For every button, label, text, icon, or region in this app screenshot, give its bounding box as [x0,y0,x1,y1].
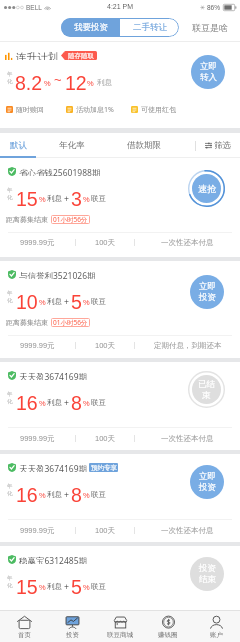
staticText: 年 [7,290,13,297]
staticText: 转入 [200,72,217,83]
staticText: + [64,297,69,306]
staticText: 年 [7,575,13,582]
staticText: 投资 [199,482,216,493]
button[interactable]: 首页 [0,610,48,642]
staticText: 100天 [95,526,116,535]
button[interactable]: 二手转让 [120,18,179,37]
staticText: 100天 [95,618,116,627]
staticText: 随存随取 [68,52,94,60]
staticText: 化 [7,194,13,201]
staticText: 天天盈3674169期 [19,463,88,472]
staticText: 借款期限 [127,140,161,151]
button[interactable]: 立即 [191,55,225,89]
staticText: 年 [7,187,13,194]
staticText: 筛选 [214,140,231,151]
staticText: 86% [207,4,221,11]
staticText: 活动加息1% [76,105,114,114]
staticText: 年 [7,71,13,78]
staticText: 距离募集结束 [6,318,48,327]
staticText: 8 [71,484,82,502]
staticText: 利息 [47,297,62,306]
button[interactable]: 我要投资 [61,18,120,37]
staticText: 联豆 [91,582,106,591]
staticText: % [39,195,46,203]
staticText: 3 [71,188,82,206]
staticText: 一次性还本付息 [161,238,214,247]
staticText: 化 [7,78,13,85]
button[interactable]: 投资结束 [188,555,225,592]
staticText: % [83,298,90,306]
staticText: 二手转让 [133,22,167,33]
button[interactable]: 年化率 [42,133,102,158]
staticText: 01小时56分 [53,318,88,327]
staticText: + [64,490,69,499]
staticText: 化 [7,582,13,589]
staticText: 投资 [199,563,216,574]
button[interactable]: 天天盈3674169期 [0,362,240,450]
button[interactable]: 借款期限 [108,133,180,158]
staticText: 化 [7,297,13,304]
button[interactable]: 与信誉利3521026期 [0,261,240,358]
button[interactable]: 省心省钱25601988期 [0,158,240,257]
staticText: 100天 [95,238,116,247]
staticText: 一次性还本付息 [161,434,214,443]
staticText: BELL [26,4,42,11]
staticText: 100天 [95,341,116,350]
button[interactable]: 筛选 [196,133,240,158]
staticText: 定期付息，到期还本 [154,341,222,350]
staticText: % [39,399,46,407]
staticText: 利息 [47,490,62,499]
staticText: 8 [71,392,82,410]
staticText: % [83,195,90,203]
staticText: 利息 [97,78,112,87]
staticText: 16 [16,484,38,502]
staticText: 结束 [199,574,216,585]
staticText: 8.2 [15,72,43,90]
button[interactable]: 已结束 [188,371,225,408]
staticText: 立即 [200,61,217,72]
staticText: 利息 [47,398,62,407]
staticText: 利息 [47,582,62,591]
button[interactable]: 立即投资 [188,273,225,310]
staticText: 天天盈3674169期 [19,371,88,380]
staticText: 年 [7,391,13,398]
button[interactable]: 联豆是啥 [192,22,228,33]
button[interactable]: 立即投资 [188,463,225,500]
staticText: 年 [7,483,13,490]
staticText: 账户 [210,631,223,639]
button[interactable]: 账户 [192,610,240,642]
staticText: 4:21 PM [107,3,134,11]
staticText: 9999.99元 [20,238,55,247]
staticText: 投资 [66,631,79,639]
staticText: % [39,491,46,499]
staticText: 100天 [95,434,116,443]
button[interactable]: 天天盈3674169期 [0,454,240,542]
staticText: 9999.99元 [20,434,55,443]
staticText: 利息 [47,194,62,203]
staticText: 5 [71,576,82,594]
staticText: % [83,399,90,407]
staticText: 5 [71,291,82,309]
button[interactable]: 默认 [0,133,36,158]
staticText: 9999.99元 [20,618,55,627]
staticText: 联豆商城 [107,631,133,639]
button[interactable]: 速抢 [188,170,225,207]
staticText: 16 [16,392,38,410]
button[interactable]: 联豆商城 [96,610,144,642]
staticText: 15 [16,576,38,594]
staticText: 联豆 [91,398,106,407]
staticText: 一次性还本付息 [161,618,214,627]
staticText: 联豆 [91,490,106,499]
staticText: 默认 [10,140,27,151]
staticText: 距离募集结束 [6,215,48,224]
button[interactable]: 稳赢宝6312485期 [0,546,240,610]
staticText: % [39,583,46,591]
staticText: 15 [16,188,38,206]
staticText: 我要投资 [74,22,108,33]
staticText: 9999.99元 [20,341,55,350]
staticText: 赚钱圈 [158,631,178,639]
staticText: 束 [202,390,211,401]
staticText: 已结 [198,379,215,390]
button[interactable]: 投资 [48,610,96,642]
button[interactable]: 赚钱圈 [144,610,192,642]
